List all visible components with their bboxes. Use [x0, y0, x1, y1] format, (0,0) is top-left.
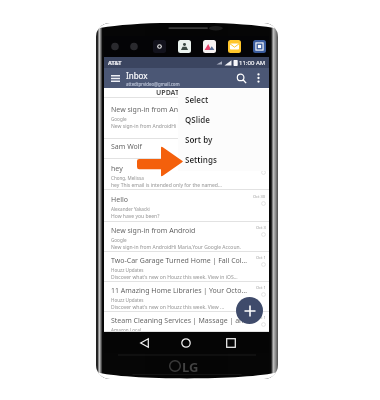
button[interactable]: Two-Car Garage Turned Home | Fall Colors…: [104, 252, 269, 282]
staticText: Alexander Yakacki: [111, 206, 150, 212]
staticText: Steam Cleaning Services | Massage | and …: [111, 316, 250, 326]
button[interactable]: Steam Cleaning Services | Massage | and …: [104, 312, 269, 332]
button[interactable]: New sign-in from Android: [104, 222, 269, 252]
staticText: New sign-in from Android: [111, 226, 196, 236]
staticText: How have you been?: [111, 213, 160, 220]
staticText: Hello: [111, 195, 128, 205]
staticText: Oct 1: [256, 255, 266, 260]
button[interactable]: More options: [251, 71, 265, 85]
button[interactable]: QSlide: [178, 109, 269, 129]
staticText: Google: [111, 116, 127, 122]
button[interactable]: Settings: [178, 149, 269, 169]
staticText: Sort by: [185, 134, 213, 145]
staticText: AT&T: [108, 59, 122, 66]
staticText: hey This email is intended only for the …: [111, 182, 222, 189]
button[interactable]: hey: [104, 159, 269, 190]
button[interactable]: 11 Amazing Home Libraries | Your October…: [104, 282, 269, 312]
button[interactable]: Recents: [220, 332, 241, 353]
staticText: Oct 1: [256, 285, 266, 290]
staticText: Amazon Local: [111, 327, 141, 333]
button[interactable]: Home: [175, 332, 196, 353]
button[interactable]: Back: [134, 332, 155, 353]
staticText: Google: [111, 237, 127, 243]
staticText: Houzz Updates: [111, 267, 144, 273]
button[interactable]: New sign-in from Android: [104, 98, 269, 139]
button[interactable]: Navigation drawer: [108, 71, 123, 86]
staticText: Sam Wolf: [111, 142, 142, 152]
staticText: Discover what's new on Houzz this week. …: [111, 274, 238, 281]
staticText: LG: [182, 358, 199, 376]
staticText: Select: [185, 94, 209, 105]
staticText: Two-Car Garage Turned Home | Fall Colors…: [111, 256, 250, 266]
staticText: Discover what's new on Houzz this week. …: [111, 304, 225, 311]
staticText: Oct 1: [256, 315, 266, 320]
staticText: New sign-in from AndroidHi Maria,Your Go…: [111, 123, 241, 130]
staticText: Settings: [185, 154, 217, 165]
staticText: hey: [111, 164, 123, 174]
staticText: Inbox: [126, 70, 148, 81]
button[interactable]: Sam Wolf: [104, 139, 269, 159]
button[interactable]: Compose: [236, 297, 263, 324]
staticText: Houzz Updates: [111, 297, 144, 303]
staticText: 11 Amazing Home Libraries | Your October…: [111, 286, 250, 296]
button[interactable]: Select: [178, 89, 269, 109]
staticText: New sign-in from Android: [111, 105, 196, 115]
staticText: UPDATES: [156, 88, 187, 97]
button[interactable]: Search: [233, 70, 250, 87]
staticText: Oct 30: [253, 194, 266, 199]
staticText: QSlide: [185, 114, 210, 125]
staticText: Chong, Melissa: [111, 175, 144, 181]
staticText: Oct 3: [256, 225, 266, 230]
staticText: attedtprvideo@gmail.com: [126, 81, 180, 87]
staticText: New sign-in from AndroidHi Maria,Your Go…: [111, 244, 241, 251]
staticText: 11:00 AM: [239, 59, 266, 67]
button[interactable]: Hello: [104, 190, 269, 222]
button[interactable]: Sort by: [178, 129, 269, 149]
